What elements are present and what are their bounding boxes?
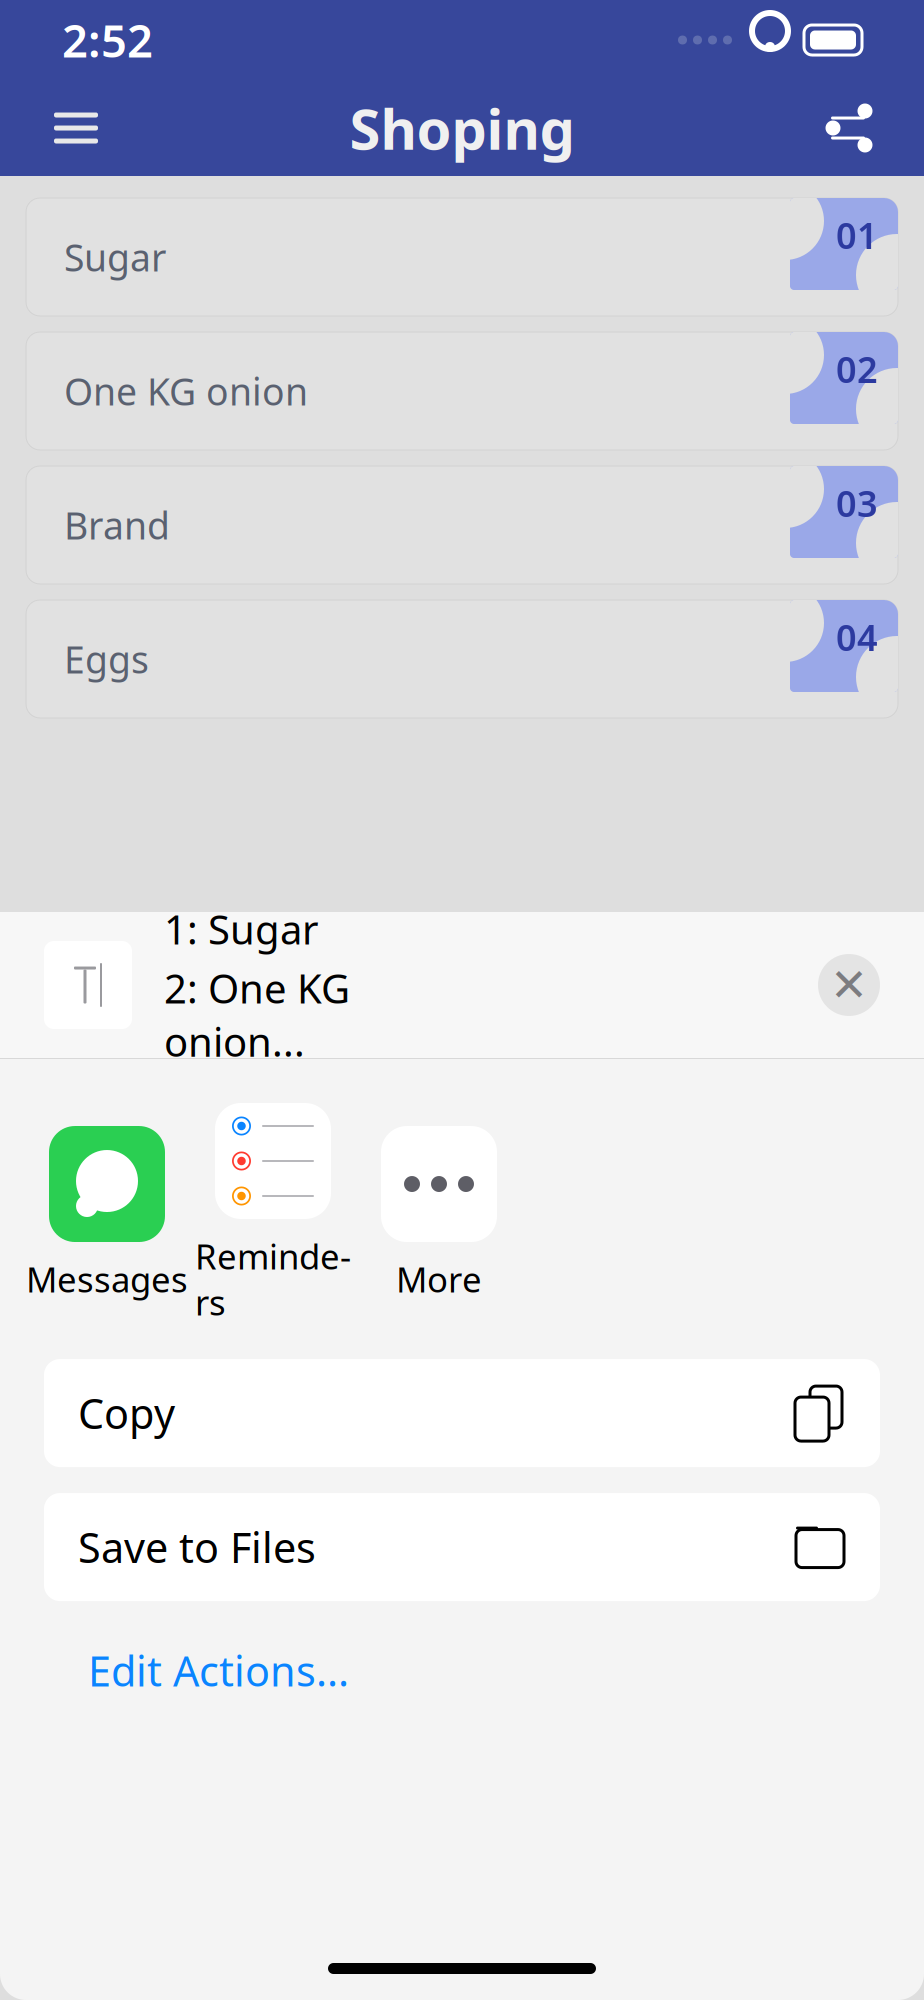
button[interactable]: Reminders	[190, 1103, 356, 1325]
staticText: 03	[836, 479, 878, 527]
staticText: Sugar	[64, 232, 166, 282]
button[interactable]: Save to Files	[44, 1493, 880, 1601]
staticText: One KG onion	[64, 366, 308, 416]
staticText: 2: One KG onion...	[164, 961, 350, 1068]
button[interactable]: Close	[818, 954, 880, 1016]
button[interactable]: Menu	[40, 92, 112, 164]
staticText: Brand	[64, 500, 170, 550]
staticText: 01	[836, 211, 878, 259]
staticText: Reminders	[195, 1233, 351, 1325]
button[interactable]: Messages	[24, 1126, 190, 1302]
staticText: Save to Files	[78, 1520, 316, 1574]
button[interactable]: Copy	[44, 1359, 880, 1467]
staticText: Eggs	[64, 634, 149, 684]
staticText: Copy	[78, 1386, 175, 1440]
button[interactable]: Edit Actions...	[88, 1629, 349, 1712]
staticText: Edit Actions...	[88, 1643, 349, 1698]
staticText: 2:52	[62, 10, 153, 70]
staticText: Messages	[26, 1256, 188, 1302]
staticText: Shoping	[349, 91, 574, 165]
button[interactable]: More	[356, 1126, 522, 1302]
staticText: 02	[836, 345, 878, 393]
staticText: More	[396, 1256, 482, 1302]
staticText: 1: Sugar	[164, 902, 319, 955]
staticText: 04	[836, 613, 878, 661]
staticText: ✕	[830, 959, 868, 1011]
button[interactable]: Share	[812, 92, 884, 164]
